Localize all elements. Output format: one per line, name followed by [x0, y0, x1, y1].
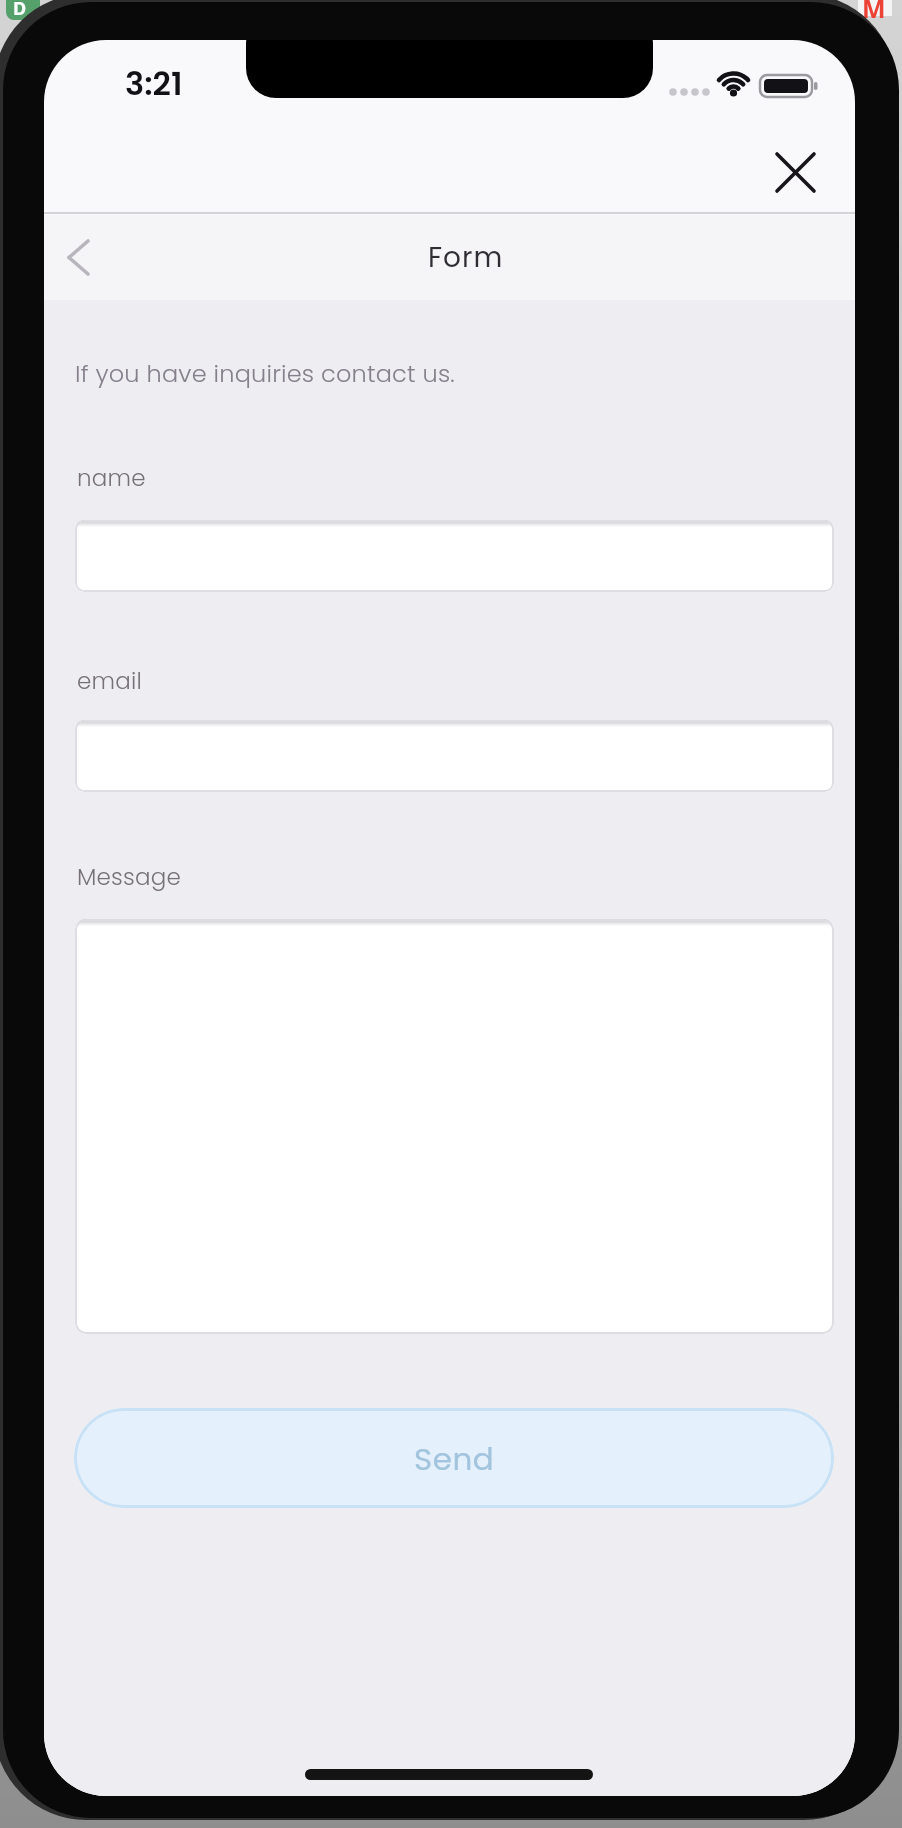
staticText: D [13, 0, 27, 21]
staticText: If you have inquiries contact us. [75, 357, 455, 391]
staticText: email [77, 665, 142, 697]
staticText: name [77, 462, 146, 494]
button[interactable]: Send [74, 1408, 834, 1508]
button[interactable] [75, 720, 834, 792]
button[interactable] [48, 226, 108, 288]
staticText: Send [414, 1437, 495, 1480]
staticText: Message [77, 861, 181, 893]
button[interactable] [75, 520, 834, 592]
staticText: M [862, 0, 886, 25]
button[interactable] [75, 919, 834, 1334]
button[interactable] [767, 144, 823, 200]
staticText: 3:21 [125, 61, 183, 106]
staticText: Form [428, 238, 504, 277]
